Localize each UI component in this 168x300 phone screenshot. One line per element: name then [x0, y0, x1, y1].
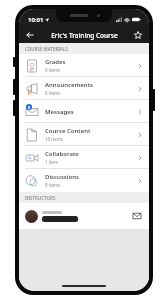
button[interactable]: Announcements: [19, 77, 149, 100]
staticText: Discussions: [45, 173, 79, 181]
staticText: COURSE MATERIALS: [25, 46, 68, 52]
staticText: 8 items: [45, 90, 61, 96]
staticText: Course Content: [45, 127, 91, 135]
button[interactable]: Collaborate: [19, 146, 149, 169]
staticText: Messages: [45, 108, 74, 116]
staticText: 8: [28, 105, 31, 110]
button[interactable]: Email instructor: [131, 210, 143, 222]
button[interactable]: Course Content: [19, 123, 149, 146]
staticText: Collaborate: [45, 150, 79, 158]
button[interactable]: Grades: [19, 54, 149, 77]
button[interactable]: Back: [23, 28, 37, 42]
button[interactable]: Email instructor: [19, 203, 149, 229]
staticText: 8 items: [45, 182, 61, 188]
button[interactable]: Favorite: [131, 28, 145, 42]
staticText: INSTRUCTORS: [25, 195, 56, 201]
staticText: Grades: [45, 58, 66, 66]
staticText: 8 items: [45, 67, 61, 73]
staticText: Announcements: [45, 81, 94, 89]
button[interactable]: Discussions: [19, 169, 149, 192]
button[interactable]: 8: [19, 100, 149, 123]
staticText: 16 items: [45, 136, 64, 142]
staticText: 10:01: [28, 16, 44, 24]
staticText: Eric's Training Course: [51, 31, 118, 40]
staticText: 1 item: [45, 159, 59, 165]
